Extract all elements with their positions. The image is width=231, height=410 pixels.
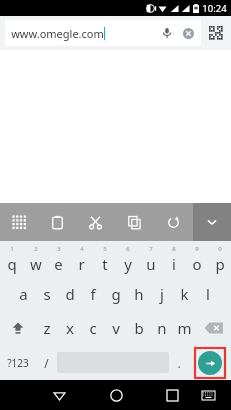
staticText: t — [102, 254, 108, 274]
staticText: k — [180, 284, 189, 304]
button[interactable]: x — [58, 311, 81, 345]
staticText: 9 — [195, 245, 199, 253]
staticText: p — [215, 254, 225, 274]
button[interactable]: m — [173, 311, 196, 345]
button[interactable]: 3 — [47, 241, 70, 277]
staticText: x — [66, 318, 74, 338]
button[interactable]: v — [104, 311, 127, 345]
staticText: q — [7, 254, 17, 274]
staticText: 3 — [57, 245, 61, 253]
button[interactable]: Undo — [154, 203, 193, 241]
button[interactable]: www.omegle.com — [5, 20, 201, 46]
button[interactable]: 0 — [208, 241, 231, 277]
staticText: r — [78, 254, 85, 274]
staticText: ?123 — [7, 356, 29, 370]
staticText: y — [124, 254, 132, 274]
button[interactable]: h — [127, 277, 150, 311]
button[interactable]: g — [104, 277, 127, 311]
button[interactable]: l — [196, 277, 219, 311]
button[interactable]: 5 — [93, 241, 116, 277]
button[interactable]: Backspace — [196, 311, 231, 345]
staticText: d — [65, 284, 75, 304]
staticText: 1 — [10, 245, 14, 253]
staticText: z — [43, 318, 51, 338]
button[interactable]: 8 — [162, 241, 185, 277]
staticText: 4 — [80, 245, 84, 253]
staticText: b — [134, 318, 144, 338]
button[interactable]: Switch keyboard — [190, 380, 226, 410]
button[interactable]: 9 — [185, 241, 208, 277]
staticText: 8 — [172, 245, 176, 253]
button[interactable]: Back — [41, 380, 78, 410]
button[interactable]: Scan QR code — [206, 23, 226, 43]
staticText: 0 — [218, 245, 222, 253]
button[interactable]: Go — [198, 351, 222, 375]
staticText: . — [177, 355, 181, 371]
staticText: 6 — [126, 245, 130, 253]
button[interactable]: Copy — [115, 203, 154, 241]
button[interactable]: Clear text — [181, 26, 195, 40]
button[interactable]: 4 — [70, 241, 93, 277]
staticText: 5 — [103, 245, 107, 253]
button[interactable]: Paste — [38, 203, 76, 241]
button[interactable]: 2 — [24, 241, 47, 277]
staticText: 7 — [149, 245, 153, 253]
button[interactable]: Recent apps — [154, 380, 190, 410]
button[interactable]: . — [169, 345, 189, 380]
button[interactable]: 7 — [139, 241, 162, 277]
staticText: h — [134, 284, 144, 304]
staticText: v — [112, 318, 120, 338]
button[interactable]: b — [127, 311, 150, 345]
staticText: m — [177, 318, 192, 338]
button[interactable]: Shift — [0, 311, 35, 345]
button[interactable]: Keyboard layout — [0, 203, 38, 241]
staticText: e — [54, 254, 63, 274]
staticText: / — [44, 355, 49, 371]
button[interactable]: / — [35, 345, 57, 380]
button[interactable]: k — [173, 277, 196, 311]
staticText: 2 — [34, 245, 38, 253]
button[interactable]: Collapse toolbar — [193, 203, 231, 241]
button[interactable]: 1 — [0, 241, 24, 277]
button[interactable]: j — [150, 277, 173, 311]
staticText: n — [157, 318, 167, 338]
button[interactable]: z — [35, 311, 58, 345]
button[interactable]: c — [81, 311, 104, 345]
button[interactable]: ?123 — [0, 345, 35, 380]
button[interactable]: n — [150, 311, 173, 345]
staticText: c — [89, 318, 97, 338]
staticText: 10:24 — [202, 2, 227, 15]
button[interactable]: Voice search — [159, 25, 175, 41]
staticText: u — [146, 254, 156, 274]
staticText: o — [192, 254, 202, 274]
button[interactable]: Home — [98, 380, 134, 410]
staticText: www.omegle.com — [11, 26, 104, 41]
button[interactable]: f — [81, 277, 104, 311]
staticText: i — [172, 254, 176, 274]
staticText: a — [19, 284, 28, 304]
button[interactable]: a — [12, 277, 35, 311]
staticText: j — [160, 284, 164, 304]
staticText: l — [206, 284, 210, 304]
staticText: s — [43, 284, 51, 304]
button[interactable]: d — [58, 277, 81, 311]
staticText: w — [30, 254, 42, 274]
staticText: g — [111, 284, 121, 304]
button[interactable]: Cut — [76, 203, 115, 241]
staticText: f — [90, 284, 96, 304]
button[interactable]: s — [35, 277, 58, 311]
button[interactable]: 6 — [116, 241, 139, 277]
